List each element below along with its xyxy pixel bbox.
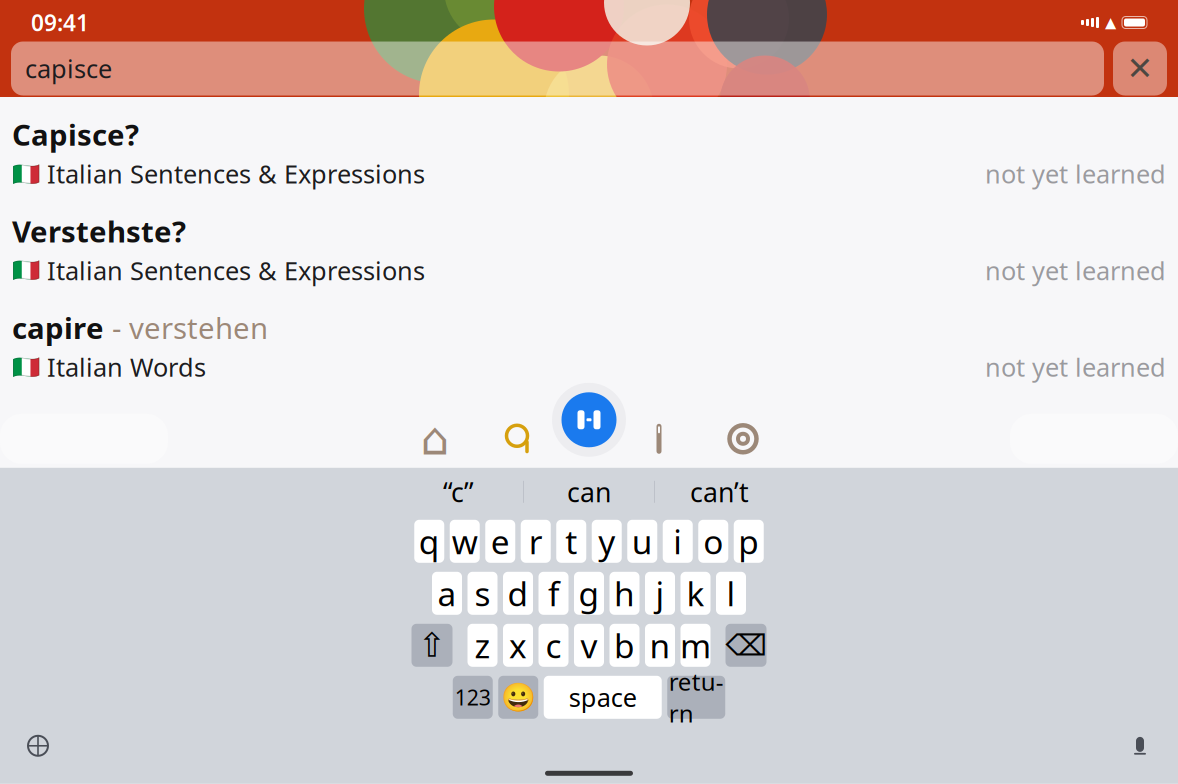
button[interactable]: g — [574, 572, 604, 615]
staticText: Italian Words — [47, 350, 206, 384]
button[interactable]: Search — [477, 414, 561, 464]
button[interactable]: r — [521, 520, 551, 563]
staticText: Verstehste? — [12, 212, 186, 251]
staticText: ⌂ — [420, 413, 449, 465]
button[interactable]: space — [544, 676, 662, 719]
staticText: ⌫ — [725, 629, 766, 662]
staticText: Italian Sentences & Expressions — [47, 253, 425, 287]
staticText: m — [680, 623, 711, 667]
button[interactable]: b — [609, 624, 639, 667]
button[interactable]: p — [734, 520, 764, 563]
staticText: 🇮🇹 — [12, 354, 40, 380]
staticText: Capisce? — [12, 115, 139, 154]
staticText: a — [437, 571, 456, 615]
button[interactable]: c — [538, 624, 568, 667]
staticText: space — [569, 680, 637, 714]
button[interactable]: a — [432, 572, 462, 615]
staticText: y — [598, 519, 615, 563]
staticText: o — [703, 519, 723, 563]
staticText: 🇮🇹 — [12, 161, 40, 187]
button[interactable]: Dictate — [1118, 729, 1162, 763]
button[interactable]: o — [698, 520, 728, 563]
staticText: r — [529, 519, 543, 563]
staticText: 09:41 — [31, 7, 89, 37]
button[interactable]: z — [467, 624, 497, 667]
staticText: q — [419, 519, 440, 563]
button[interactable]: k — [680, 572, 710, 615]
button[interactable]: u — [627, 520, 657, 563]
button[interactable]: q — [414, 520, 444, 563]
staticText: l — [726, 571, 735, 615]
button[interactable]: Settings — [701, 414, 785, 464]
button[interactable]: return — [667, 676, 725, 719]
staticText: i — [673, 519, 682, 563]
staticText: d — [507, 571, 528, 615]
button[interactable]: Clear search — [1113, 41, 1167, 95]
staticText: v — [580, 623, 597, 667]
staticText: not yet learned — [985, 157, 1166, 191]
staticText: j — [655, 571, 664, 615]
staticText: ▲ — [1105, 14, 1116, 31]
button[interactable]: Emoji — [498, 676, 538, 719]
staticText: e — [491, 519, 510, 563]
staticText: b — [614, 623, 635, 667]
button[interactable]: can — [524, 470, 654, 514]
staticText: 🇮🇹 — [12, 257, 40, 283]
staticText: not yet learned — [985, 253, 1166, 287]
button[interactable]: capisce — [11, 41, 1104, 95]
button[interactable]: Edit — [617, 414, 701, 464]
staticText: x — [509, 623, 527, 667]
staticText: can — [567, 474, 611, 509]
staticText: s — [474, 571, 490, 615]
button[interactable]: f — [538, 572, 568, 615]
staticText: capisce — [25, 52, 112, 85]
staticText: w — [452, 519, 478, 563]
button[interactable]: s — [467, 572, 497, 615]
staticText: n — [649, 623, 670, 667]
button[interactable]: “c” — [393, 470, 523, 514]
staticText: c — [545, 623, 561, 667]
button[interactable]: e — [485, 520, 515, 563]
button[interactable]: Shift — [411, 624, 452, 667]
button[interactable]: y — [592, 520, 622, 563]
button[interactable]: Train — [552, 395, 626, 469]
button[interactable]: v — [574, 624, 604, 667]
staticText: 😀 — [501, 681, 536, 713]
button[interactable]: w — [450, 520, 480, 563]
staticText: g — [578, 571, 599, 615]
staticText: t — [565, 519, 577, 563]
staticText: Italian Sentences & Expressions — [47, 157, 425, 191]
staticText: - verstehen — [104, 308, 268, 347]
button[interactable]: x — [503, 624, 533, 667]
button[interactable]: Delete — [725, 624, 766, 667]
button[interactable]: capire — [0, 304, 1178, 388]
staticText: z — [474, 623, 490, 667]
button[interactable]: d — [503, 572, 533, 615]
staticText: k — [686, 571, 704, 615]
button[interactable]: Next keyboard — [16, 729, 60, 763]
staticText: h — [614, 571, 635, 615]
button[interactable]: i — [663, 520, 693, 563]
staticText: not yet learned — [985, 350, 1166, 384]
button[interactable]: j — [645, 572, 675, 615]
staticText: return — [669, 665, 724, 729]
button[interactable]: n — [645, 624, 675, 667]
button[interactable]: 123 — [453, 676, 493, 719]
button[interactable]: m — [680, 624, 710, 667]
staticText: 123 — [455, 683, 491, 711]
staticText: u — [632, 519, 653, 563]
staticText: f — [548, 571, 559, 615]
staticText: p — [738, 519, 759, 563]
staticText: capire — [12, 308, 104, 347]
button[interactable]: Capisce? — [0, 111, 1178, 195]
staticText: ⇧ — [418, 626, 446, 664]
button[interactable]: h — [609, 572, 639, 615]
button[interactable]: t — [556, 520, 586, 563]
button[interactable]: Home — [393, 414, 477, 464]
staticText: “c” — [443, 474, 474, 509]
button[interactable]: Verstehste? — [0, 208, 1178, 291]
button[interactable]: can’t — [655, 470, 785, 514]
button[interactable]: l — [716, 572, 746, 615]
staticText: ✕ — [1126, 50, 1153, 87]
staticText: can’t — [690, 474, 749, 509]
